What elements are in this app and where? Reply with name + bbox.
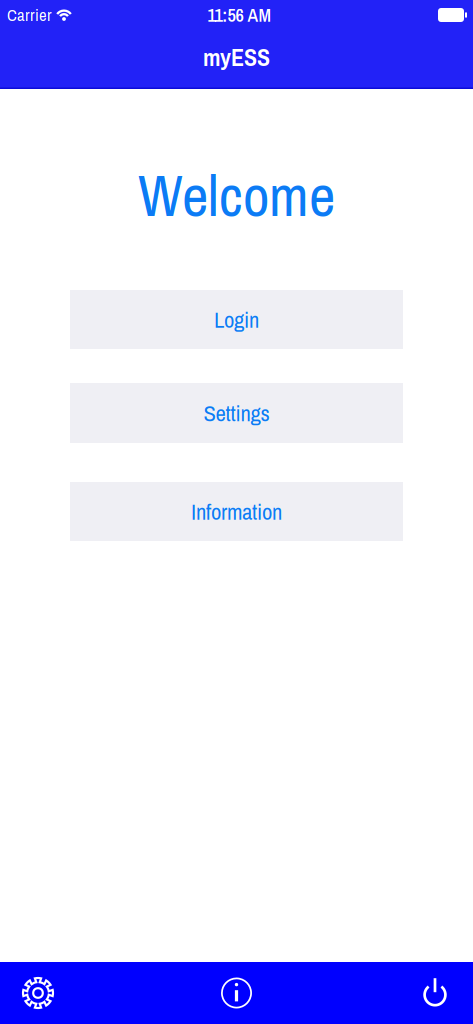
staticText: Login	[214, 304, 259, 335]
button[interactable]: Information	[70, 482, 403, 541]
button[interactable]: Information	[219, 976, 253, 1010]
staticText: Carrier	[7, 4, 52, 26]
staticText: Welcome	[138, 156, 335, 234]
button[interactable]: Log out	[418, 976, 452, 1010]
button[interactable]: Login	[70, 290, 403, 349]
staticText: 11:56 AM	[207, 3, 271, 27]
button[interactable]: Settings	[70, 383, 403, 443]
button[interactable]: Settings	[21, 976, 55, 1010]
staticText: Information	[191, 496, 282, 527]
staticText: Settings	[203, 398, 269, 428]
staticText: myESS	[203, 41, 270, 73]
